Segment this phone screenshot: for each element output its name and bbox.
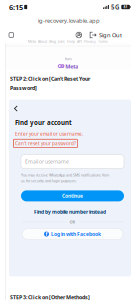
staticText: Meta About Blog Jobs Help API Privacy Te… xyxy=(28,39,108,44)
staticText: 81 xyxy=(124,5,128,9)
staticText: f xyxy=(45,231,47,237)
staticText: You may receive WhatsApp and SMS notific… xyxy=(21,173,109,177)
staticText: Enter your email or username. xyxy=(15,131,83,137)
staticText: Meta xyxy=(65,62,78,70)
staticText: Find by mobile number instead xyxy=(34,208,106,215)
button[interactable]: f xyxy=(9,229,131,240)
button[interactable]: Find by mobile number instead xyxy=(9,208,131,215)
button[interactable]: ig-recovery.lovable.app xyxy=(0,14,138,27)
staticText: STEP 2: Click on [Can't Reset Your xyxy=(10,75,90,82)
button[interactable]: Continue xyxy=(9,190,131,201)
staticText: Continue xyxy=(62,192,83,199)
button[interactable]: Account xyxy=(73,29,85,41)
staticText: Email or username xyxy=(25,158,69,165)
button[interactable]: Sign Out xyxy=(90,29,122,41)
staticText: Log in with Facebook xyxy=(51,231,101,237)
staticText: 5G xyxy=(111,3,119,11)
button[interactable]: Menu xyxy=(6,30,17,40)
staticText: Password] xyxy=(10,84,37,92)
staticText: ig-recovery.lovable.app xyxy=(38,17,100,24)
staticText: from xyxy=(64,56,71,61)
staticText: Find your account xyxy=(15,118,72,127)
staticText: Can't reset your password? xyxy=(15,140,76,147)
staticText: 6:15 xyxy=(9,2,23,12)
staticText: OR xyxy=(69,219,75,224)
staticText: STEP 3: Click on [Other Methods] xyxy=(10,293,90,300)
staticText: us for security and login purposes. xyxy=(21,178,77,183)
staticText: Sign Out xyxy=(99,31,122,39)
button[interactable]: Back xyxy=(9,104,18,112)
